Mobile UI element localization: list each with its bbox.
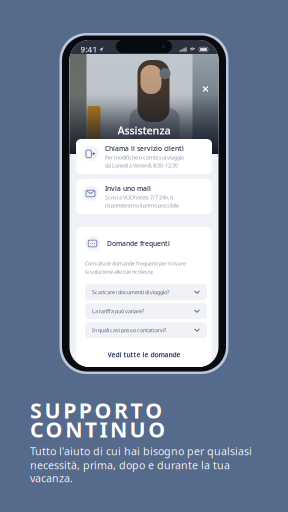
staticText: Domande frequenti	[107, 239, 170, 248]
staticText: La tariffa può variare?	[92, 308, 144, 315]
staticText: risponderemo il primo possibile	[105, 202, 179, 209]
staticText: Scaricare i documenti di viaggio?	[92, 289, 169, 296]
button[interactable]: Chiudi	[199, 83, 211, 95]
button[interactable]: Invia uno mail	[76, 179, 212, 214]
staticText: CONTINUO	[30, 415, 165, 443]
staticText: Vedi tutte le domande	[107, 350, 180, 359]
staticText: Chiama il servizio clienti	[105, 144, 184, 153]
staticText: da Lunedì a Venerdì, 8:30-12:30	[105, 162, 178, 169]
staticText: SUPPORTO	[30, 396, 162, 424]
staticText: In quali casi posso contattarvi?	[92, 327, 166, 334]
staticText: 9:41	[80, 44, 97, 55]
staticText: Consulta le domande frequenti per trovar…	[85, 260, 186, 267]
staticText: Tutto l'aiuto di cui hai bisogno per qua…	[30, 444, 252, 458]
staticText: necessità, prima, dopo e durante la tua	[30, 458, 230, 472]
button[interactable]: In quali casi posso contattarvi?	[85, 322, 207, 338]
staticText: Invia uno mail	[105, 184, 151, 193]
button[interactable]: Vedi tutte le domande	[85, 349, 203, 360]
staticText: la soluzione alle tue richieste	[85, 268, 153, 275]
staticText: Per modifiche o combi sul viaggio	[105, 154, 184, 161]
staticText: Scrivi a VODhotels 7/7 24h, ti	[105, 194, 173, 201]
button[interactable]: Chiama il servizio clienti	[76, 139, 212, 174]
button[interactable]: La tariffa può variare?	[85, 303, 207, 319]
staticText: Assistenza	[117, 123, 170, 137]
button[interactable]: Scaricare i documenti di viaggio?	[85, 284, 207, 300]
staticText: vacanza.	[30, 471, 73, 485]
